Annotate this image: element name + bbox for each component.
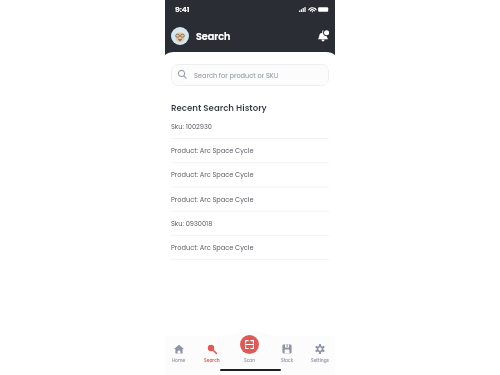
staticText: Home <box>172 357 186 363</box>
button[interactable]: Product: Arc Space Cycle <box>171 187 329 211</box>
staticText: Settings <box>311 357 329 363</box>
staticText: Product: Arc Space Cycle <box>171 170 254 179</box>
button[interactable]: Scan <box>233 344 267 363</box>
button[interactable]: Product: Arc Space Cycle <box>171 235 329 259</box>
button[interactable]: Search <box>195 344 229 363</box>
staticText: Stock <box>281 357 294 363</box>
button[interactable]: Sku: 0930018 <box>171 211 329 235</box>
button[interactable]: Notifications <box>317 30 329 42</box>
button[interactable]: Stock <box>270 344 304 363</box>
staticText: Search <box>204 357 220 363</box>
staticText: 9:41 <box>175 4 190 15</box>
button[interactable]: Search for product or SKU <box>171 64 329 86</box>
staticText: Search <box>196 30 231 43</box>
staticText: Product: Arc Space Cycle <box>171 243 254 252</box>
staticText: Scan <box>244 357 256 363</box>
button[interactable]: Product: Arc Space Cycle <box>171 162 329 186</box>
button[interactable]: Profile <box>171 27 189 45</box>
staticText: Sku: 1002930 <box>171 122 213 131</box>
button[interactable]: Product: Arc Space Cycle <box>171 138 329 162</box>
button[interactable]: Scan <box>240 335 259 354</box>
button[interactable]: Sku: 1002930 <box>171 114 329 138</box>
button[interactable]: Settings <box>303 344 337 363</box>
staticText: Search for product or SKU <box>194 71 279 80</box>
staticText: Product: Arc Space Cycle <box>171 195 254 204</box>
button[interactable]: Home <box>162 344 196 363</box>
staticText: Sku: 0930018 <box>171 219 213 228</box>
staticText: Product: Arc Space Cycle <box>171 146 254 155</box>
staticText: Recent Search History <box>171 102 267 114</box>
